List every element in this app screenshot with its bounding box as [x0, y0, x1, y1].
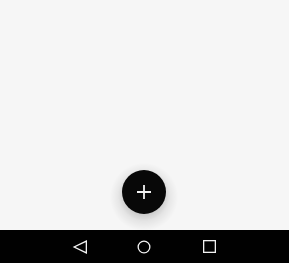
button[interactable]: Recent apps [186, 230, 232, 263]
button[interactable]: Add [122, 170, 166, 214]
button[interactable]: Back [57, 230, 103, 263]
button[interactable]: Home [121, 230, 167, 263]
